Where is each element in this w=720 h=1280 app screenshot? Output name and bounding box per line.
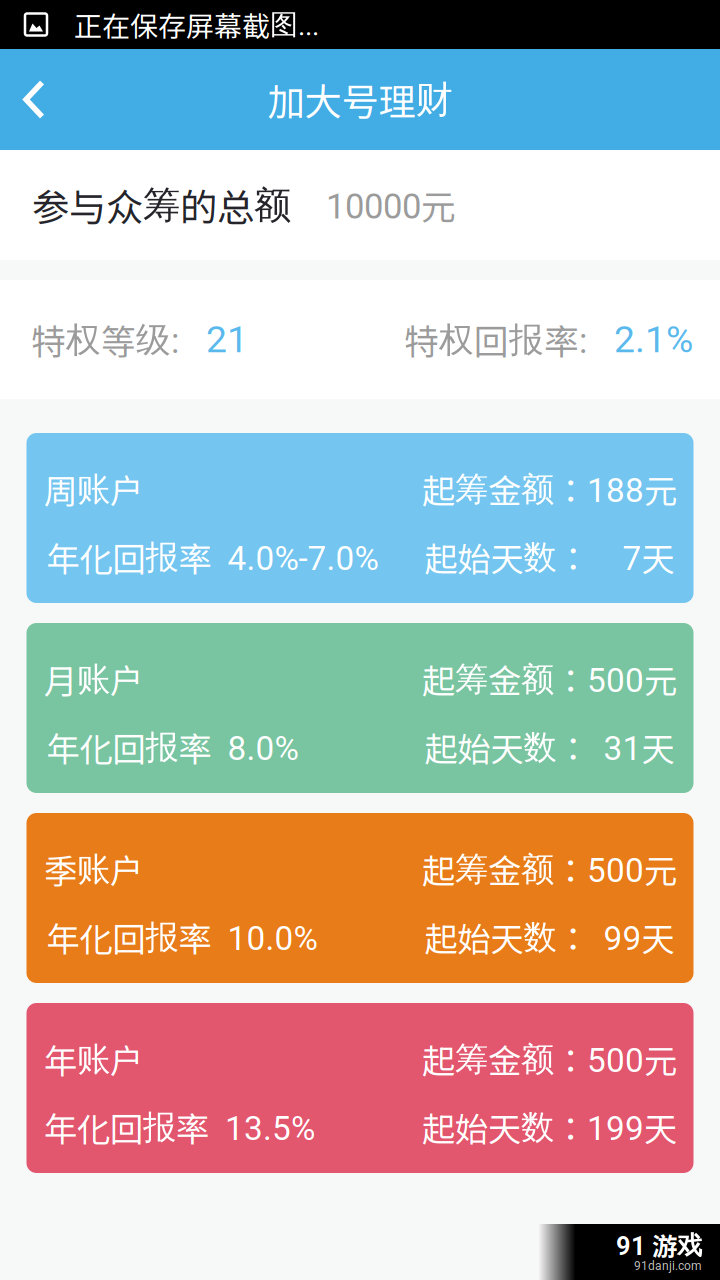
button[interactable]: 年账户 bbox=[26, 1003, 693, 1173]
staticText: 99天 bbox=[603, 913, 674, 961]
staticText: 参与众筹的总额 bbox=[32, 178, 291, 232]
staticText: 特权等级: bbox=[31, 314, 179, 365]
staticText: 起筹金额：500元 bbox=[422, 1035, 677, 1083]
staticText: 91 游戏 bbox=[616, 1227, 702, 1263]
staticText: 31天 bbox=[603, 723, 674, 771]
staticText: 起始天数： bbox=[424, 533, 589, 581]
staticText: 2.1% bbox=[614, 318, 693, 361]
staticText: 季账户 bbox=[44, 845, 143, 893]
staticText: 7天 bbox=[622, 533, 674, 581]
staticText: 正在保存屏幕截图... bbox=[74, 4, 319, 45]
staticText: 周账户 bbox=[44, 465, 143, 513]
staticText: 21 bbox=[206, 318, 248, 361]
staticText: 199天 bbox=[587, 1103, 677, 1151]
staticText: 年化回报率 8.0% bbox=[46, 723, 298, 771]
staticText: 起始天数： bbox=[424, 723, 589, 771]
staticText: 10000元 bbox=[326, 180, 456, 230]
staticText: 特权回报率: bbox=[404, 314, 587, 365]
staticText: 起筹金额：188元 bbox=[422, 465, 677, 513]
staticText: 加大号理财 bbox=[267, 72, 452, 127]
button[interactable]: 月账户 bbox=[26, 623, 693, 793]
staticText: 起筹金额：500元 bbox=[422, 845, 677, 893]
staticText: 年账户 bbox=[44, 1035, 143, 1083]
button[interactable]: Back bbox=[0, 49, 68, 150]
staticText: 年化回报率 10.0% bbox=[46, 913, 317, 961]
button[interactable]: 季账户 bbox=[26, 813, 693, 983]
staticText: 起筹金额：500元 bbox=[422, 655, 677, 703]
staticText: 起始天数： bbox=[424, 913, 589, 961]
staticText: 年化回报率 13.5% bbox=[44, 1103, 315, 1151]
staticText: 91danji.com bbox=[634, 1259, 702, 1273]
staticText: 起始天数： bbox=[422, 1103, 587, 1151]
staticText: 月账户 bbox=[44, 655, 143, 703]
button[interactable]: 周账户 bbox=[26, 433, 693, 603]
staticText: 年化回报率 4.0%-7.0% bbox=[46, 533, 378, 581]
